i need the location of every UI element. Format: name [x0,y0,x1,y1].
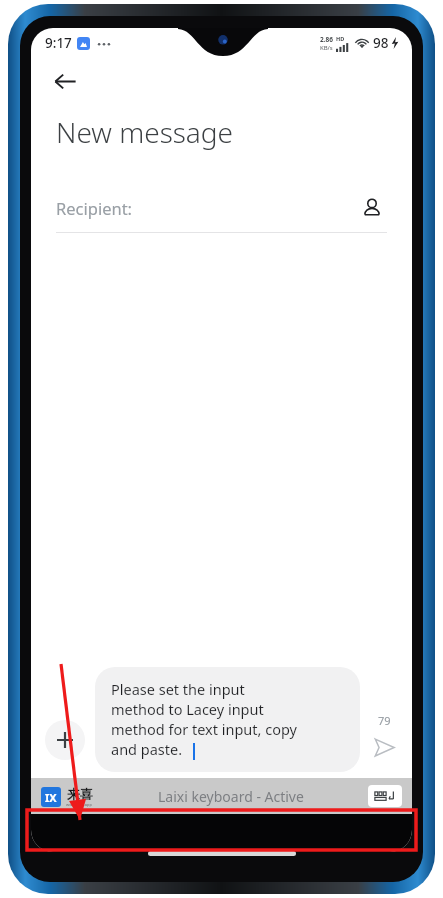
staticText: IX [45,790,57,805]
staticText: KB/s [320,44,333,52]
button[interactable]: Back [45,61,85,101]
staticText: 2.86 [320,35,333,44]
staticText: 9:17 [45,34,72,52]
button[interactable]: Please set the input method to Lacey inp… [95,667,360,772]
staticText: 79 [378,713,391,728]
staticText: Please set the input method to Lacey inp… [111,679,297,759]
staticText: www.laixi.app [66,802,93,807]
button[interactable]: Choose contact [357,193,387,223]
staticText: 来喜 [67,786,93,802]
button[interactable]: Send [369,732,399,762]
staticText: Recipient: [56,197,133,219]
button[interactable]: Add attachment [45,720,85,760]
staticText: New message [56,113,234,151]
staticText: 98 [373,34,389,52]
button[interactable]: Recipient: [56,188,387,228]
button[interactable]: Switch keyboard [368,785,402,807]
button[interactable]: IX [31,778,412,814]
staticText: HD [336,35,345,42]
staticText: Laixi keyboard - Active [158,787,304,806]
